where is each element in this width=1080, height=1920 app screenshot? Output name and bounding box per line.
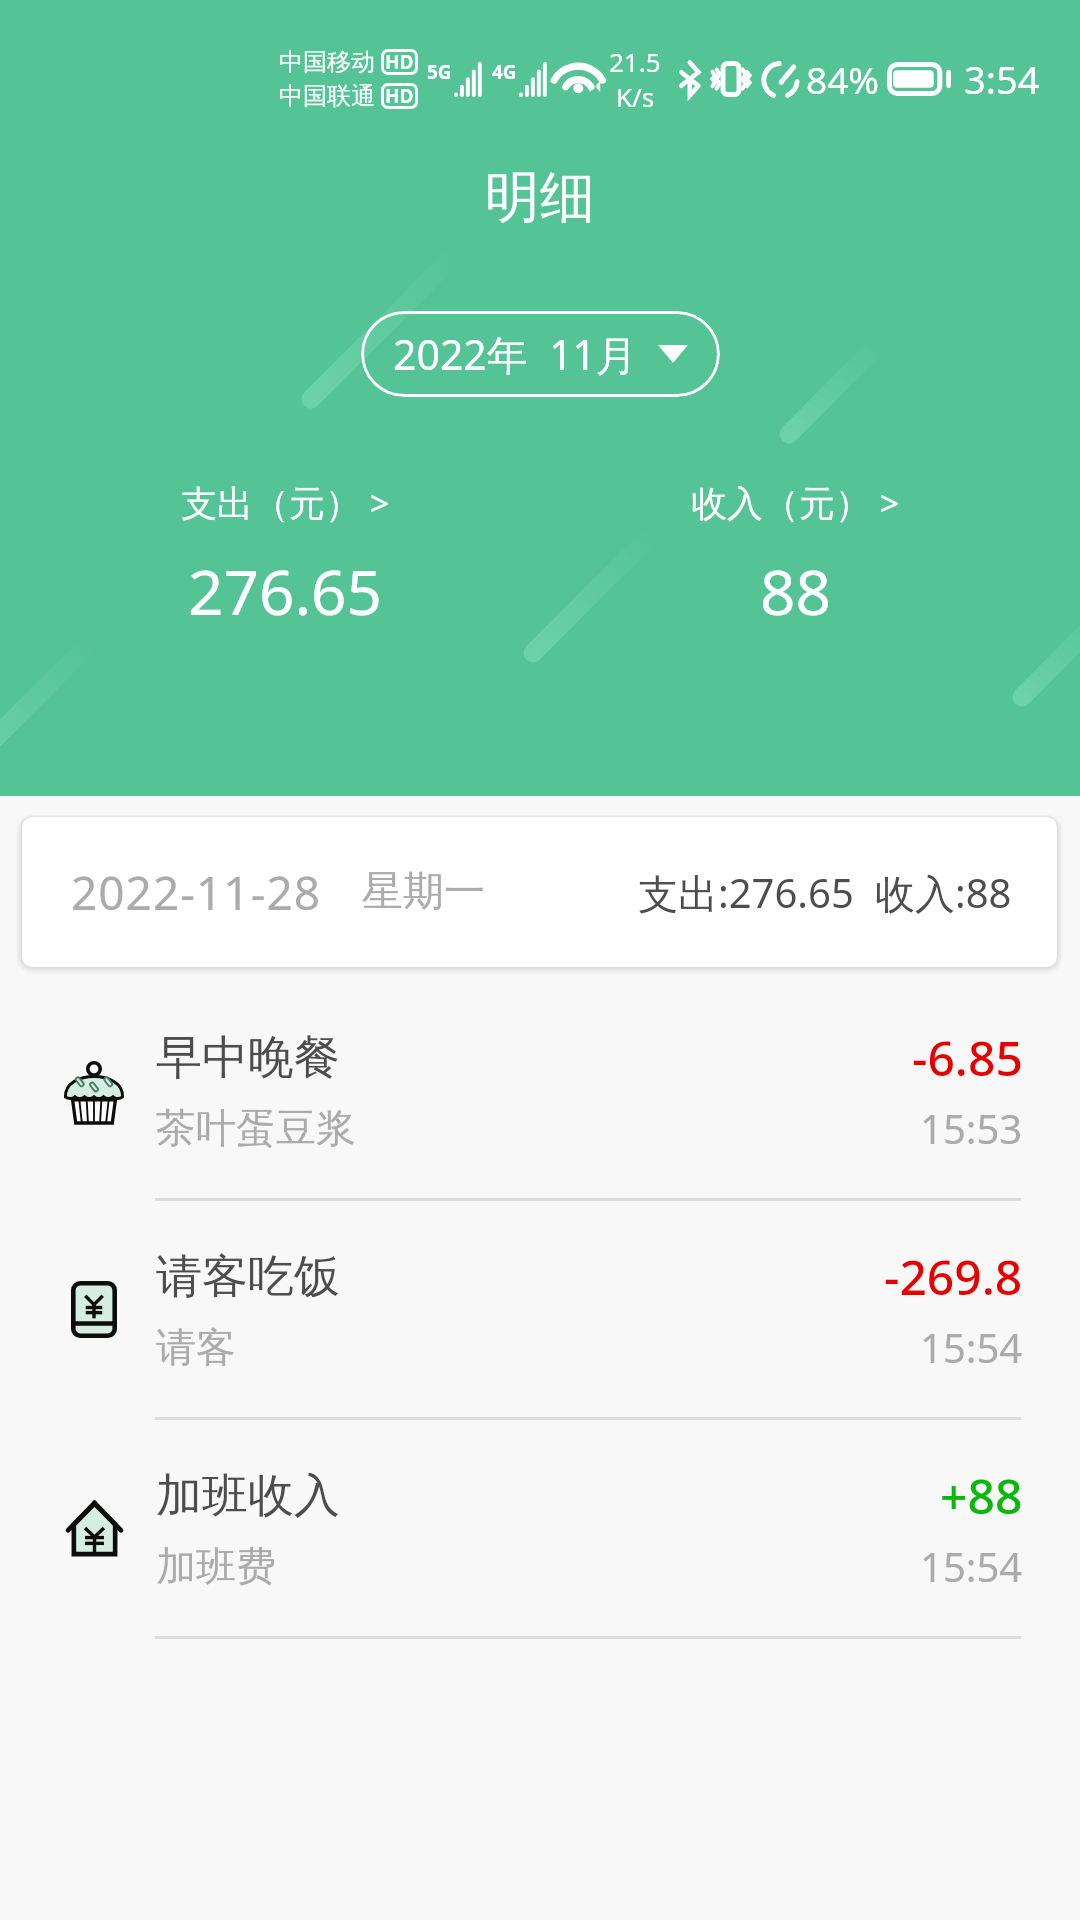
staticText: 5G	[427, 59, 452, 85]
button[interactable]: 2022年 11月	[361, 311, 720, 397]
staticText: 2022年 11月	[393, 326, 638, 382]
staticText: 2022-11-28	[71, 861, 322, 924]
button[interactable]: 支出（元）	[45, 480, 525, 633]
staticText: 支出:276.65	[638, 865, 854, 920]
staticText: 88	[760, 549, 831, 633]
staticText: >	[871, 480, 900, 526]
button[interactable]: Meal category	[0, 982, 1080, 1201]
button[interactable]: Home category	[0, 1420, 1080, 1639]
button[interactable]: 2022-11-28	[22, 817, 1057, 967]
staticText: 276.65	[188, 549, 382, 633]
staticText: 早中晚餐	[156, 1029, 340, 1087]
staticText: 加班费	[156, 1541, 276, 1591]
staticText: 84%	[806, 54, 880, 104]
staticText: -6.85	[912, 1025, 1023, 1090]
staticText: 收入:88	[875, 865, 1012, 920]
staticText: 星期一	[362, 866, 485, 918]
staticText: 21.5	[609, 44, 661, 79]
staticText: HD	[385, 49, 414, 75]
staticText: K/s	[616, 79, 655, 114]
staticText: 4G	[492, 59, 517, 85]
other: Meal category	[63, 1056, 125, 1124]
staticText: 请客	[156, 1322, 236, 1372]
other: Wallet category	[71, 1281, 117, 1338]
staticText: 收入（元）	[691, 481, 871, 526]
staticText: 明细	[485, 163, 595, 232]
staticText: 茶叶蛋豆浆	[156, 1103, 356, 1153]
staticText: +88	[940, 1463, 1023, 1528]
staticText: 15:54	[920, 1539, 1023, 1593]
button[interactable]: Wallet category	[0, 1201, 1080, 1420]
staticText: 支出（元）	[181, 481, 361, 526]
staticText: 加班收入	[156, 1467, 340, 1525]
button[interactable]: 收入（元）	[555, 480, 1035, 633]
staticText: >	[361, 480, 390, 526]
staticText: 请客吃饭	[156, 1248, 340, 1306]
staticText: -269.8	[884, 1244, 1023, 1309]
staticText: 15:53	[920, 1101, 1023, 1155]
staticText: 15:54	[920, 1320, 1023, 1374]
staticText: HD	[385, 83, 414, 109]
staticText: 中国联通	[279, 81, 375, 111]
other: Home category	[65, 1499, 124, 1557]
staticText: 中国移动	[279, 47, 375, 77]
staticText: 3:54	[964, 53, 1040, 105]
